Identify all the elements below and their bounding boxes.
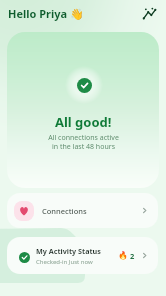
button[interactable]: Analytics bbox=[140, 4, 158, 22]
button[interactable]: My Activity Status bbox=[7, 237, 158, 274]
button[interactable]: All good! bbox=[7, 32, 159, 188]
staticText: My Activity Status bbox=[36, 246, 101, 256]
staticText: 2 bbox=[130, 251, 135, 261]
staticText: 🔥 bbox=[118, 251, 128, 260]
staticText: All connections active in the last 48 ho… bbox=[48, 133, 119, 151]
staticText: All good! bbox=[55, 113, 112, 131]
staticText: Hello Priya 👋 bbox=[8, 6, 84, 21]
staticText: Connections bbox=[42, 206, 87, 216]
button[interactable]: Connections bbox=[7, 193, 158, 228]
staticText: Checked-in Just now bbox=[36, 258, 93, 266]
